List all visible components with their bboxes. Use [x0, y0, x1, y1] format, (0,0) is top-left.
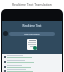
button[interactable] [2, 59, 62, 64]
button[interactable] [2, 64, 62, 69]
button[interactable]: Realtime Text Translation [0, 0, 64, 8]
staticText: Live translation [24, 33, 40, 36]
button[interactable] [2, 54, 62, 59]
staticText: Realtime Text Translation [12, 2, 52, 7]
staticText: Realtime Text [2, 24, 62, 28]
button[interactable] [2, 69, 62, 72]
other: Settings [3, 31, 8, 36]
button[interactable]: Settings [3, 31, 55, 36]
button[interactable] [27, 39, 37, 50]
